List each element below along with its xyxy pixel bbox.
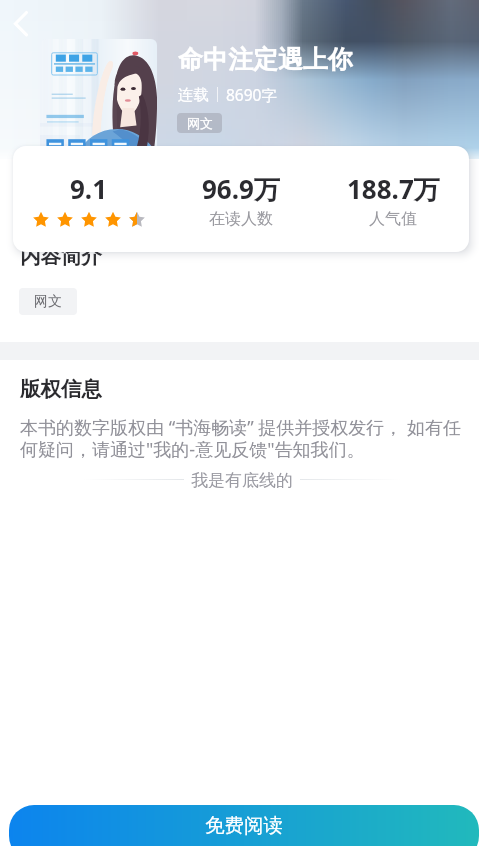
staticText: 网文 — [34, 293, 62, 311]
staticText: 版权信息 — [20, 376, 102, 402]
staticText: 命中注定遇上你 — [178, 44, 353, 75]
staticText: 网文 — [187, 115, 213, 131]
button[interactable]: 网文 — [19, 288, 77, 315]
staticText: 内容简介 — [20, 243, 102, 269]
staticText: 188.7万 — [347, 171, 440, 207]
staticText: 本书的数字版权由 “书海畅读” 提供并授权发行， 如有任何疑问，请通过"我的-意… — [20, 415, 475, 462]
staticText: 96.9万 — [202, 171, 280, 207]
staticText: 8690字 — [226, 84, 277, 105]
staticText: 免费阅读 — [205, 813, 283, 838]
staticText: 连载 — [178, 85, 209, 105]
staticText: 我是有底线的 — [191, 470, 293, 488]
button[interactable]: 免费阅读 — [9, 805, 479, 846]
button[interactable]: 网文 — [177, 113, 222, 133]
staticText: 人气值 — [369, 209, 417, 229]
staticText: 在读人数 — [209, 209, 273, 229]
button[interactable]: Back — [3, 4, 41, 42]
staticText: 9.1 — [70, 171, 108, 206]
